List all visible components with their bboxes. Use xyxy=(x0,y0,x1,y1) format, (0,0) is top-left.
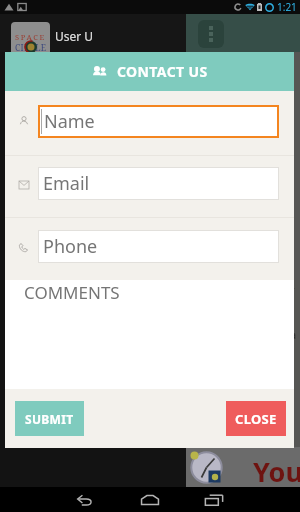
staticText: You xyxy=(253,453,300,490)
staticText: Name xyxy=(44,109,95,134)
button[interactable]: Recent apps xyxy=(184,487,244,512)
button[interactable]: Email xyxy=(38,167,279,200)
button[interactable]: Home xyxy=(120,487,180,512)
button[interactable]: CLOSE xyxy=(226,401,286,436)
staticText: Email xyxy=(43,171,90,196)
staticText: COMMENTS xyxy=(24,281,120,304)
staticText: r xyxy=(290,282,295,297)
button[interactable]: Phone xyxy=(38,230,279,263)
button[interactable]: Name xyxy=(38,105,279,138)
button[interactable]: More options xyxy=(198,20,224,48)
button[interactable]: CONTACT US xyxy=(5,52,294,91)
staticText: CONTACT US xyxy=(117,62,208,81)
button[interactable]: COMMENTS xyxy=(5,280,294,389)
button[interactable]: SUBMIT xyxy=(15,401,84,436)
staticText: User U xyxy=(55,28,94,44)
staticText: a xyxy=(290,327,297,342)
button[interactable]: Back xyxy=(55,487,115,512)
staticText: 1:21 xyxy=(277,0,297,14)
staticText: Phone xyxy=(43,234,98,259)
button[interactable]: Space Circle logo xyxy=(11,22,50,52)
staticText: CIRCLE xyxy=(15,42,47,52)
staticText: SUBMIT xyxy=(25,411,74,427)
staticText: SPACE xyxy=(15,32,46,42)
staticText: CLOSE xyxy=(235,410,277,428)
